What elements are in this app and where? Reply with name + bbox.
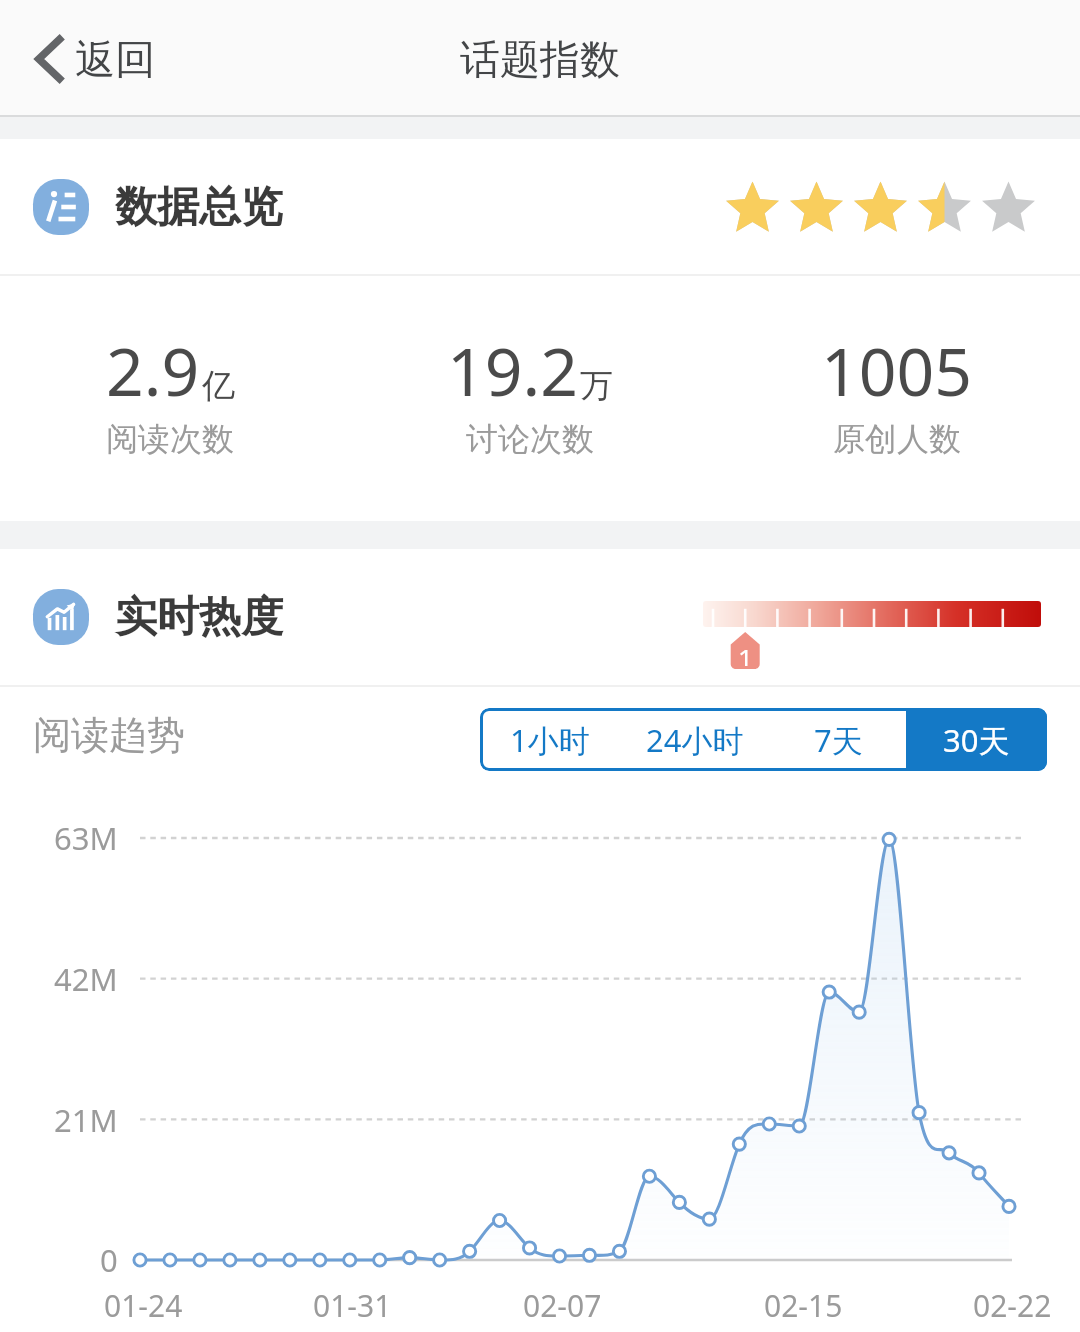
- staticText: 30天: [943, 719, 1010, 761]
- staticText: 1小时: [510, 719, 590, 761]
- button[interactable]: 30天: [906, 708, 1047, 771]
- button[interactable]: 7天: [770, 708, 906, 771]
- staticText: 2.9: [106, 325, 200, 415]
- staticText: 21M: [54, 1099, 118, 1141]
- staticText: 42M: [54, 958, 118, 1000]
- staticText: 实时热度: [115, 591, 283, 644]
- staticText: 02-15: [764, 1285, 843, 1326]
- other: Data overview: [33, 179, 89, 235]
- staticText: 阅读趋势: [33, 711, 185, 759]
- button[interactable]: Data overview: [0, 139, 1080, 274]
- button[interactable]: 1小时: [480, 708, 620, 771]
- staticText: 1: [738, 640, 753, 666]
- staticText: 阅读次数: [106, 419, 234, 459]
- staticText: 01-31: [313, 1285, 392, 1326]
- staticText: 亿: [202, 365, 235, 407]
- button[interactable]: Back: [0, 0, 175, 117]
- staticText: 讨论次数: [466, 419, 594, 459]
- staticText: 7天: [814, 719, 863, 761]
- staticText: 返回: [75, 34, 155, 84]
- other: Back: [35, 33, 66, 85]
- staticText: 02-07: [523, 1285, 602, 1326]
- staticText: 24小时: [646, 719, 744, 761]
- staticText: 万: [580, 365, 613, 407]
- staticText: 19.2: [447, 325, 578, 415]
- staticText: 数据总览: [115, 181, 283, 234]
- staticText: 02-22: [973, 1285, 1052, 1326]
- other: Realtime heat: [33, 589, 89, 645]
- staticText: 0: [100, 1239, 118, 1281]
- button[interactable]: 24小时: [620, 708, 770, 771]
- button[interactable]: Heat level 1: [703, 601, 1041, 671]
- button[interactable]: Realtime heat: [0, 549, 1080, 685]
- staticText: 1005: [821, 325, 973, 415]
- button[interactable]: Rating 3.5 of 5 stars: [726, 182, 1035, 232]
- staticText: 话题指数: [460, 34, 620, 84]
- staticText: 63M: [54, 817, 118, 859]
- staticText: 原创人数: [833, 419, 961, 459]
- staticText: 01-24: [104, 1285, 183, 1326]
